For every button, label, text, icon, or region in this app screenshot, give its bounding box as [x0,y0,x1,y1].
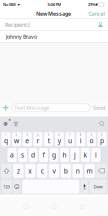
button[interactable]: 8 [76,132,85,146]
staticText: No SIM [3,2,16,7]
button[interactable]: Done [90,180,107,194]
staticText: 0 [101,133,103,137]
button[interactable]: h [60,148,69,162]
staticText: 6 [58,133,60,137]
button[interactable]: n [73,164,83,178]
button[interactable]: a [8,148,17,162]
staticText: 5:04 PM [47,2,61,7]
staticText: g [52,151,56,159]
button[interactable]: 123 [1,180,12,194]
staticText: a [10,151,14,159]
button[interactable]: Attach [3,104,9,111]
staticText: d [31,151,35,159]
staticText: i [80,136,82,145]
staticText: Recipient: [5,21,28,28]
button[interactable]: z [13,164,24,178]
staticText: 1 [5,133,7,137]
staticText: 29% [88,2,96,7]
button[interactable]: m [84,164,95,178]
button[interactable]: v [49,164,59,178]
button[interactable]: j [70,148,79,162]
button[interactable]: 5 [44,132,53,146]
button[interactable]: d [29,148,38,162]
button[interactable]: Emoji [13,180,21,194]
staticText: h [62,151,66,159]
staticText: o [89,136,93,145]
staticText: 7 [69,133,71,137]
button[interactable]: x [25,164,35,178]
button[interactable]: k [81,148,90,162]
staticText: New Message [36,10,71,17]
staticText: 9 [90,133,92,137]
staticText: x [28,166,32,175]
button[interactable]: s [18,148,27,162]
button[interactable]: f [39,148,48,162]
button[interactable]: 0 [97,132,107,146]
button[interactable]: 6 [55,132,64,146]
button[interactable]: Delete [96,164,107,178]
staticText: Done [94,184,103,189]
button[interactable]: Add contact [96,21,105,28]
staticText: Text Message [14,104,49,111]
button[interactable]: Stickers [13,121,18,126]
staticText: b [64,166,68,175]
button[interactable]: 1 [1,132,10,146]
staticText: Cancel [88,10,104,17]
button[interactable]: Dictate [81,180,88,194]
button[interactable]: 3 [23,132,32,146]
staticText: w [14,136,19,145]
staticText: m [87,166,93,175]
staticText: v [52,166,55,175]
staticText: u [68,136,72,145]
staticText: Johnny Bravo [6,33,37,40]
staticText: r [36,136,39,145]
staticText: f [42,151,44,159]
staticText: k [83,151,87,159]
staticText: t [48,136,50,145]
staticText: Send [93,104,105,111]
staticText: 5 [48,133,50,137]
button[interactable]: Shift [1,164,12,178]
staticText: y [58,136,61,145]
staticText: c [41,166,44,175]
button[interactable]: b [61,164,71,178]
staticText: e [25,136,29,145]
button[interactable]: Johnny Bravo [0,31,108,43]
staticText: z [17,166,20,175]
staticText: 8 [80,133,82,137]
button[interactable]: 4 [33,132,43,146]
button[interactable]: c [37,164,47,178]
staticText: 3 [26,133,28,137]
button[interactable]: App [2,121,9,127]
staticText: n [76,166,80,175]
button[interactable]: g [49,148,58,162]
button[interactable]: 9 [87,132,96,146]
staticText: 2 [16,133,18,137]
staticText: 4 [37,133,39,137]
staticText: s [21,151,24,159]
staticText: l [95,151,97,159]
staticText: p [100,136,104,145]
button[interactable]: l [91,148,100,162]
staticText: 123 [3,184,9,189]
button[interactable]: 7 [65,132,75,146]
staticText: j [74,151,76,159]
button[interactable]: Search emoji [99,121,105,127]
button[interactable]: 2 [12,132,21,146]
button[interactable]: Send [93,104,105,111]
staticText: q [4,136,8,145]
button[interactable]: Cancel [85,8,108,19]
